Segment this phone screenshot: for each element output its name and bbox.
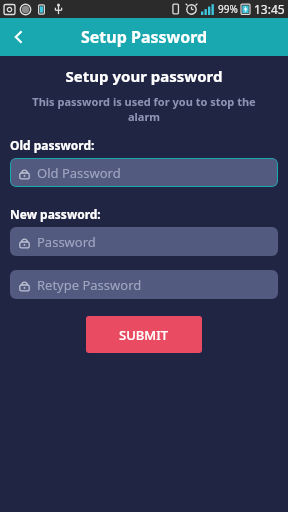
staticText: 99% [218, 2, 238, 16]
staticText: SUBMIT [119, 326, 169, 344]
button[interactable]: Back [0, 18, 38, 56]
staticText: This password is used for you to stop th… [22, 94, 266, 124]
button[interactable]: SUBMIT [86, 316, 202, 353]
staticText: Setup your password [0, 66, 288, 86]
staticText: 13:45 [254, 1, 285, 17]
staticText: Setup Password [81, 26, 208, 48]
button[interactable]: Password [10, 227, 278, 256]
staticText: Old password: [10, 137, 288, 153]
button[interactable]: Retype Password [10, 270, 278, 299]
staticText: Password [37, 233, 96, 251]
staticText: Old Password [37, 164, 121, 182]
staticText: New password: [10, 206, 288, 222]
button[interactable]: Old Password [10, 158, 278, 187]
staticText: Retype Password [37, 276, 142, 294]
